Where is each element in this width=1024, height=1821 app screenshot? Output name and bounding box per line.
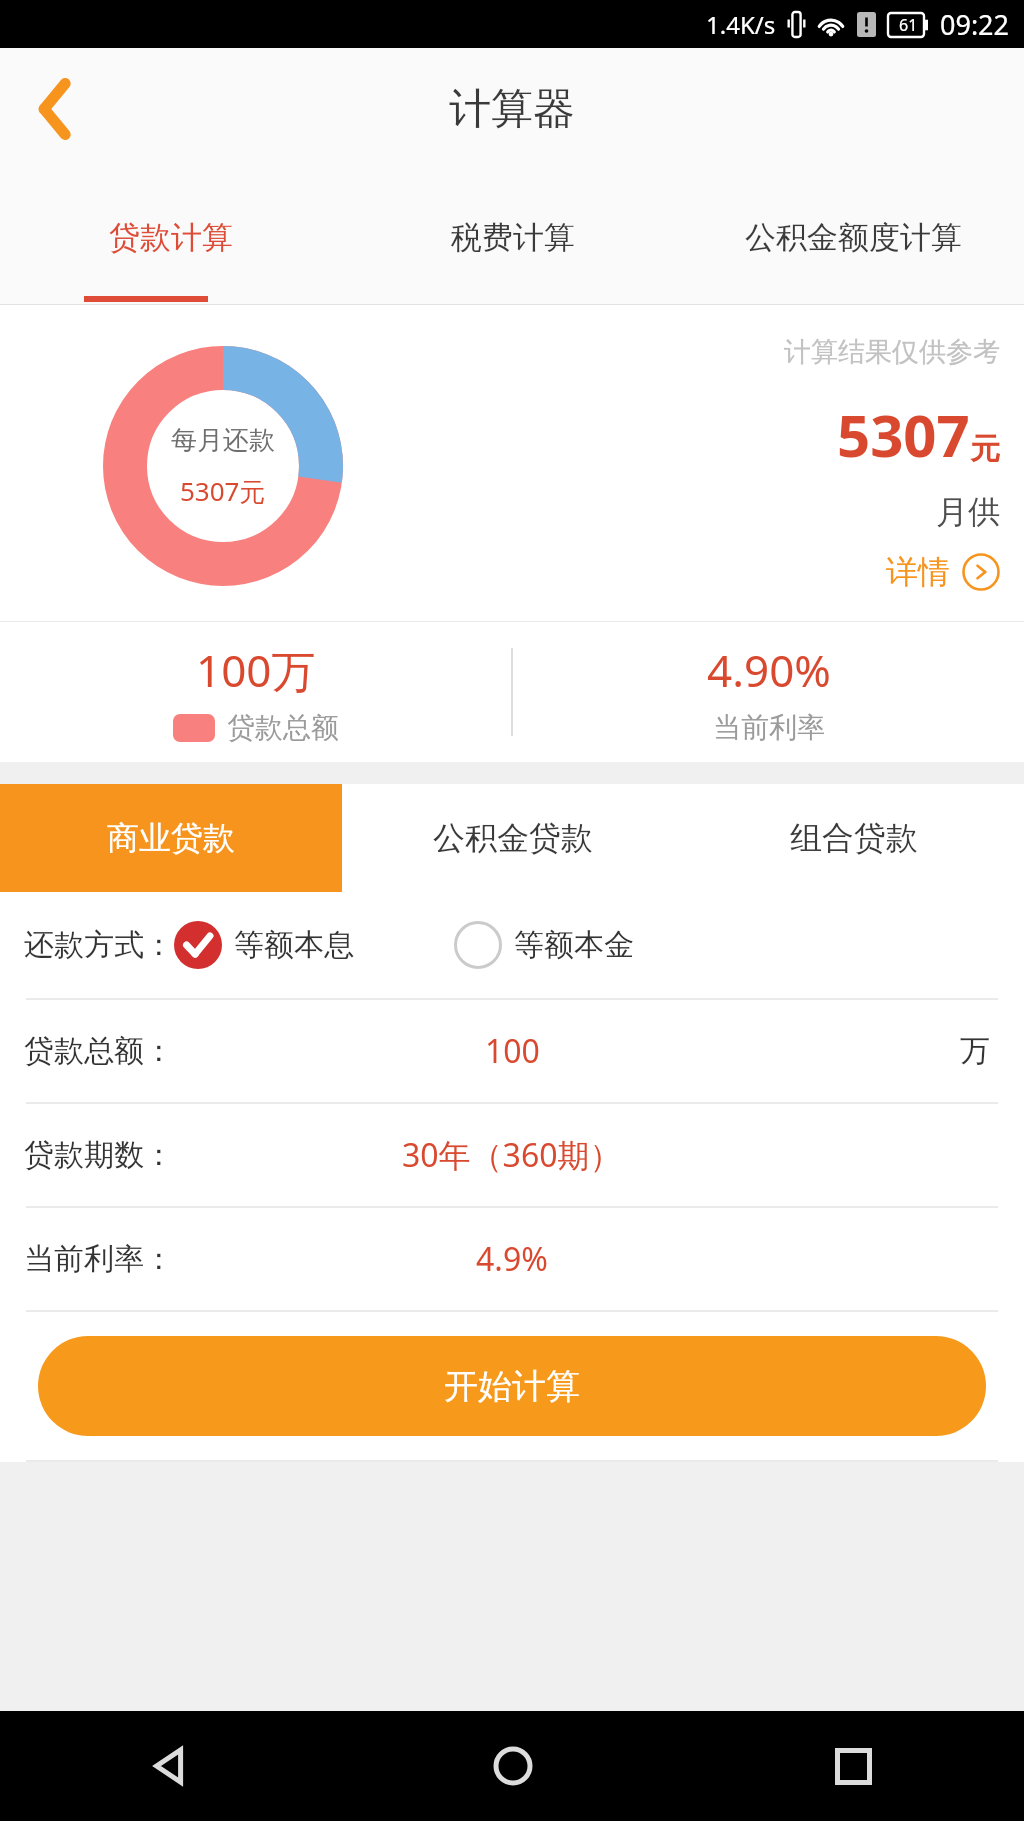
button[interactable]: Back (0, 1711, 342, 1821)
staticText: 贷款总额： (24, 1032, 174, 1070)
button[interactable]: 开始计算 (38, 1336, 986, 1436)
staticText: 贷款总额 (227, 710, 339, 745)
staticText: 当前利率 (713, 710, 825, 745)
staticText: 贷款计算 (109, 218, 233, 257)
button[interactable]: 公积金贷款 (342, 784, 683, 892)
button[interactable]: Recents (683, 1711, 1024, 1821)
staticText: 当前利率： (24, 1240, 174, 1278)
button[interactable]: 公积金额度计算 (683, 170, 1024, 304)
button[interactable]: 税费计算 (342, 170, 683, 304)
button[interactable]: 等额本息 (174, 921, 354, 969)
staticText: 万 (960, 1032, 990, 1070)
staticText: 计算结果仅供参考 (784, 335, 1000, 369)
button[interactable]: 当前利率： (0, 1208, 1024, 1310)
staticText: 月供 (936, 492, 1000, 532)
staticText: 100 (485, 1029, 540, 1073)
button[interactable]: 贷款期数： (0, 1104, 1024, 1206)
staticText: 5307 (837, 395, 970, 474)
staticText: 详情 (886, 552, 950, 592)
staticText: 等额本息 (234, 926, 354, 964)
staticText: 100万 (196, 640, 316, 700)
button[interactable]: 等额本金 (454, 921, 634, 969)
button[interactable]: 贷款总额： (0, 1000, 1024, 1102)
staticText: 09:22 (940, 6, 1010, 43)
button[interactable]: 贷款计算 (0, 170, 342, 304)
button[interactable]: 详情 (886, 552, 1000, 592)
staticText: 元 (970, 430, 1000, 468)
staticText: 1.4K/s (706, 8, 776, 41)
staticText: 30年（360期） (402, 1133, 622, 1177)
button[interactable]: 组合贷款 (683, 784, 1024, 892)
staticText: 5307元 (180, 473, 266, 509)
staticText: 每月还款 (171, 424, 275, 457)
staticText: 还款方式： (24, 926, 174, 964)
staticText: 贷款期数： (24, 1136, 174, 1174)
button[interactable]: Home (342, 1711, 683, 1821)
staticText: 61 (899, 14, 918, 36)
staticText: 开始计算 (444, 1365, 580, 1408)
staticText: 公积金贷款 (433, 818, 593, 858)
staticText: 公积金额度计算 (745, 218, 962, 257)
staticText: 4.9% (476, 1237, 548, 1281)
staticText: 商业贷款 (107, 818, 235, 858)
button[interactable]: 商业贷款 (0, 784, 342, 892)
staticText: 税费计算 (451, 218, 575, 257)
staticText: 等额本金 (514, 926, 634, 964)
staticText: 组合贷款 (790, 818, 918, 858)
staticText: 计算器 (449, 83, 575, 136)
button[interactable]: Back (0, 54, 110, 164)
staticText: 4.90% (707, 640, 831, 700)
